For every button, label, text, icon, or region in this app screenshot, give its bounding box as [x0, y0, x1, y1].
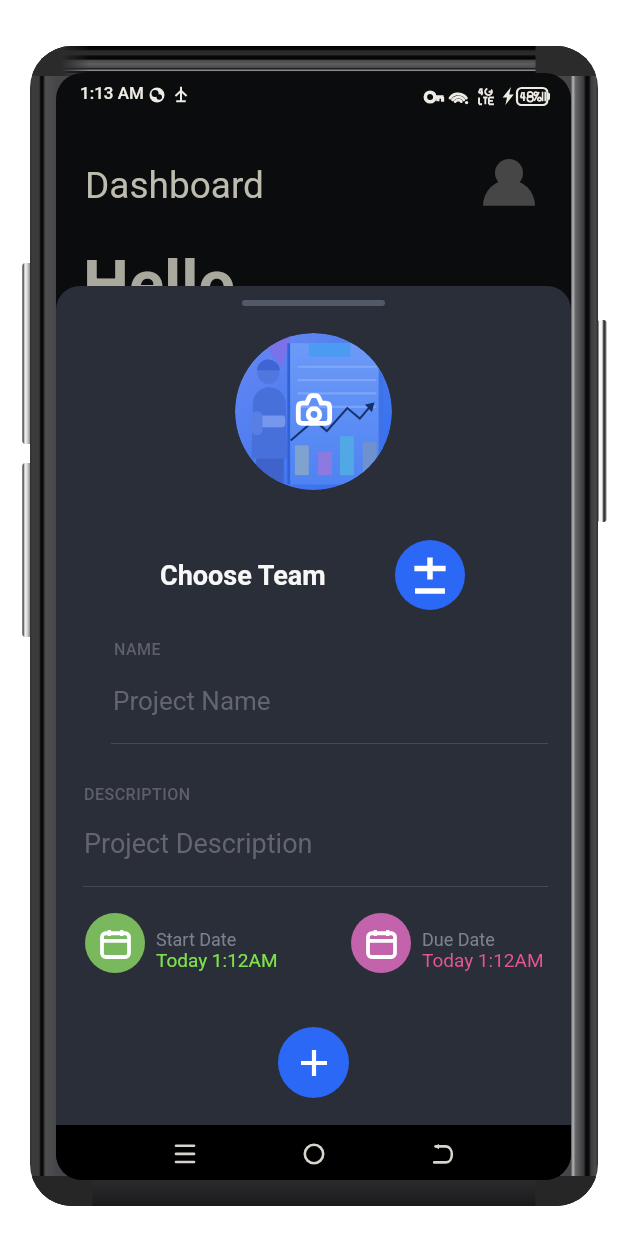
button[interactable]: Profile — [480, 153, 538, 211]
staticText: Project Name — [113, 686, 271, 716]
staticText: Hello — [83, 246, 236, 322]
button[interactable]: Recents — [166, 1135, 203, 1172]
staticText: Project Description — [84, 828, 313, 860]
button[interactable]: Create project — [278, 1027, 349, 1098]
button[interactable]: Change team photo — [235, 333, 392, 490]
staticText: Choose Team — [160, 560, 326, 592]
button[interactable]: Due Date — [351, 913, 571, 977]
button[interactable]: Start Date — [85, 913, 335, 977]
button[interactable]: Back — [424, 1135, 461, 1172]
staticText: Dashboard — [85, 164, 264, 207]
staticText: Today 1:12AM — [422, 949, 544, 971]
staticText: NAME — [114, 640, 162, 659]
staticText: 1:13 AM — [80, 83, 144, 103]
button[interactable]: Add team — [395, 540, 465, 610]
staticText: Today 1:12AM — [156, 949, 278, 971]
button[interactable]: Home — [295, 1135, 332, 1172]
staticText: Due Date — [422, 929, 495, 950]
staticText: DESCRIPTION — [84, 785, 191, 804]
staticText: Start Date — [156, 929, 237, 950]
